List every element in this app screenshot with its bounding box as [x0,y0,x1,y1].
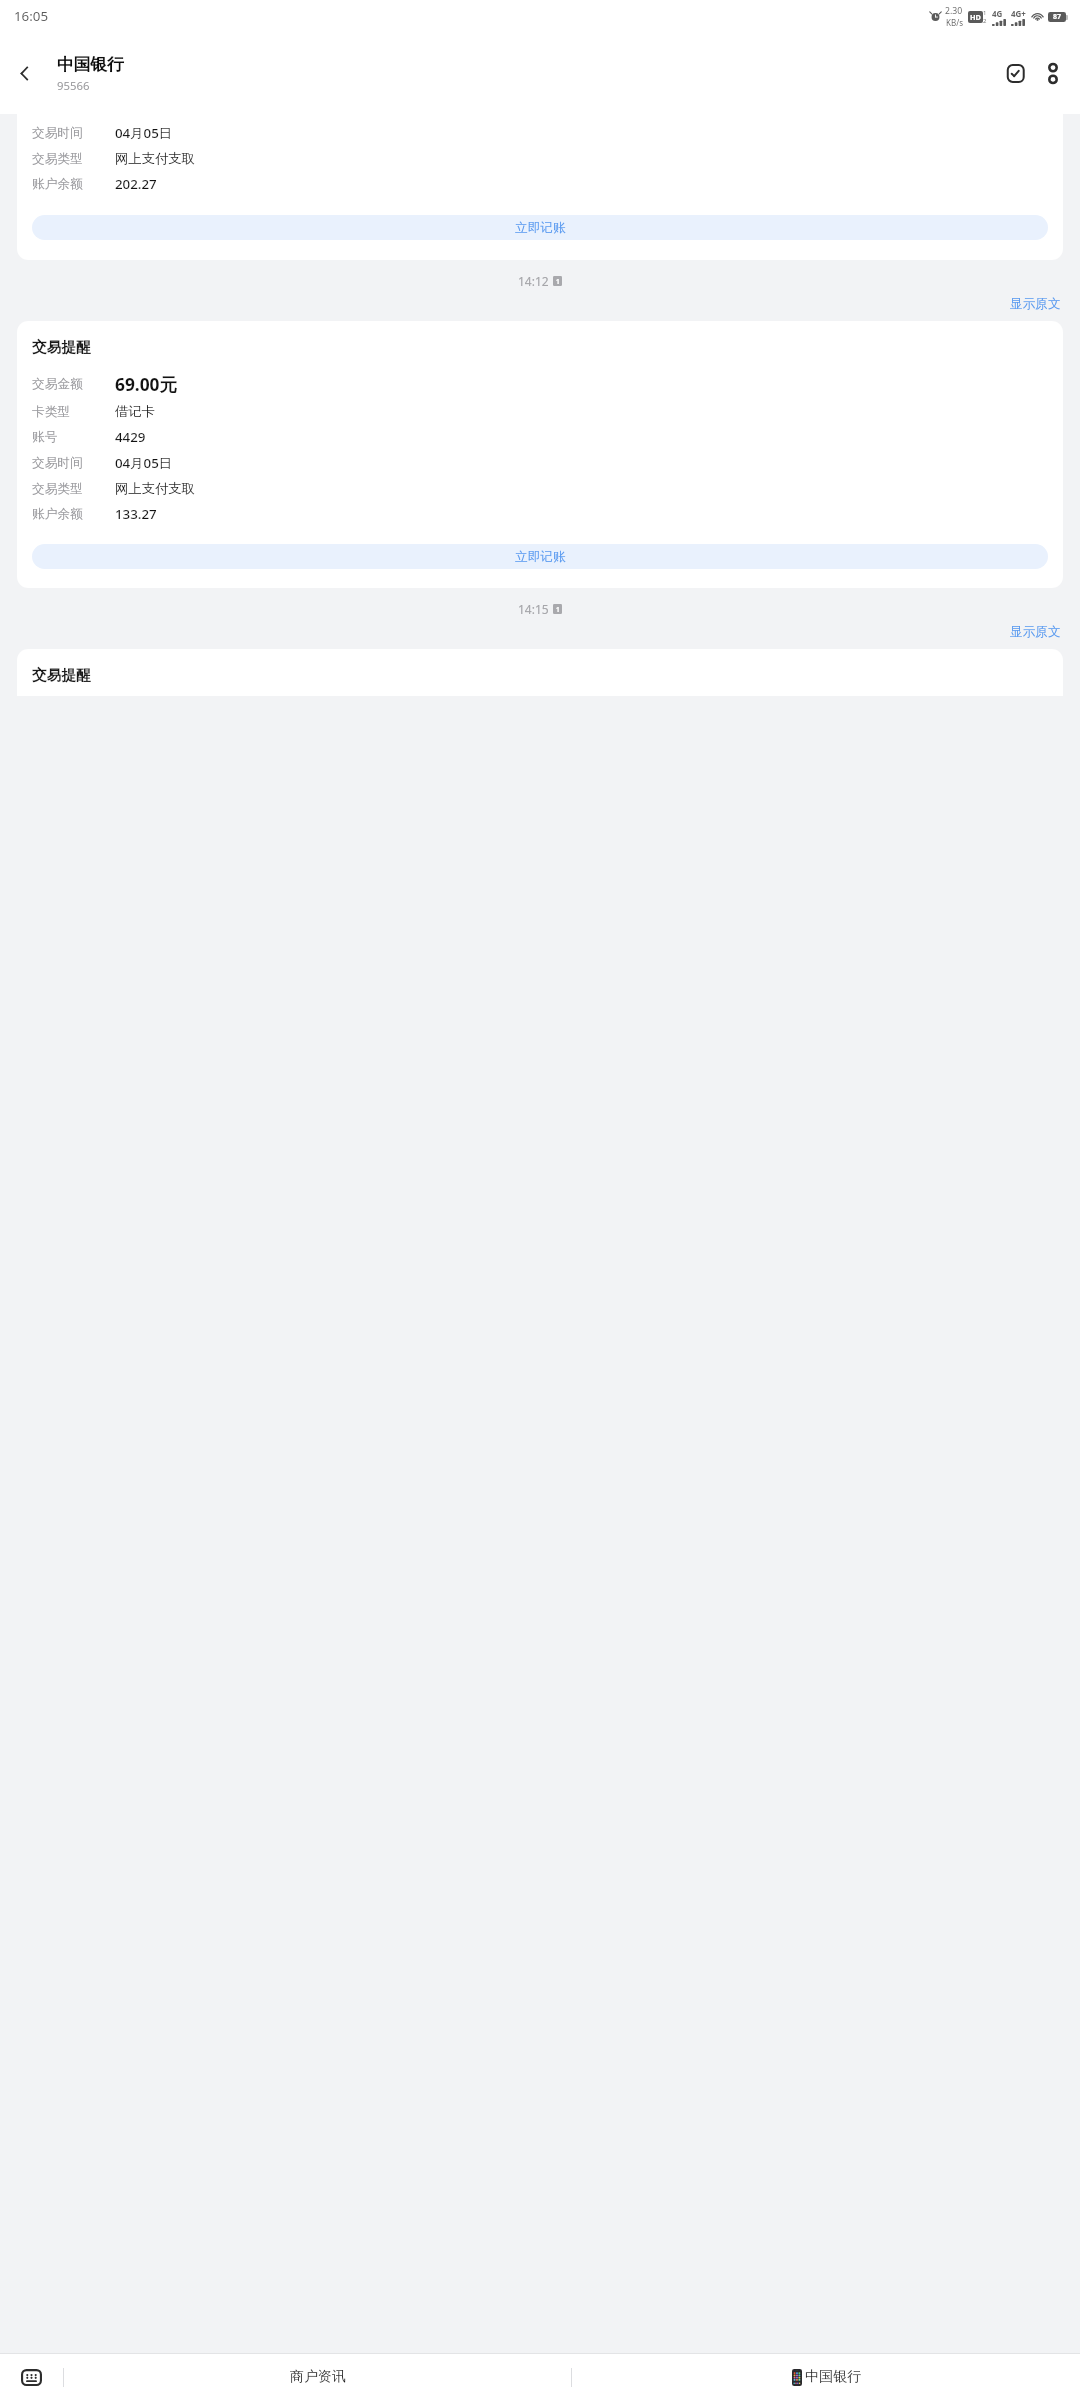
staticText: 14:15 [518,601,549,617]
staticText: 借记卡 [115,403,155,420]
button[interactable]: Keyboard [0,2354,63,2400]
staticText: 交易类型 [32,151,115,167]
button[interactable]: 交易提醒 [17,649,1063,696]
staticText: 95566 [57,78,90,93]
staticText: 1 [556,277,560,286]
staticText: 1 [556,605,560,614]
staticText: 立即记账 [515,549,566,565]
staticText: 交易时间 [32,455,115,471]
staticText: 中国银行 [805,2368,861,2386]
button[interactable]: 中国银行 [572,2354,1080,2400]
staticText: 中国银行 [57,54,124,75]
staticText: 69.00元 [115,372,177,396]
staticText: 04月05日 [115,124,173,142]
staticText: 4G+ [1011,8,1026,19]
staticText: 交易类型 [32,481,115,497]
staticText: 显示原文 [1010,624,1061,640]
staticText: 立即记账 [515,220,566,236]
button[interactable]: Select messages [997,55,1034,92]
staticText: 网上支付支取 [115,150,195,167]
button[interactable]: Back [6,55,43,92]
button[interactable]: 立即记账 [32,215,1048,240]
button[interactable]: 中国银行 [57,54,124,93]
staticText: 交易提醒 [32,338,91,356]
staticText: 交易时间 [32,125,115,141]
staticText: 1 [983,9,987,17]
staticText: KB/s [946,17,963,28]
staticText: 账号 [32,429,115,445]
staticText: 交易金额 [32,376,115,392]
staticText: 4G [992,8,1003,19]
staticText: 交易提醒 [32,666,91,684]
button[interactable]: 商户资讯 [64,2354,571,2400]
staticText: 4429 [115,428,146,446]
button[interactable]: 立即记账 [32,544,1048,569]
staticText: 04月05日 [115,454,173,472]
button[interactable]: 显示原文 [1008,622,1063,642]
staticText: 16:05 [14,7,49,25]
staticText: 2.30 [945,5,963,17]
button[interactable]: More options [1034,55,1071,92]
staticText: 商户资讯 [290,2368,346,2386]
staticText: 账户余额 [32,506,115,522]
staticText: 卡类型 [32,404,115,420]
button[interactable]: 交易时间 [17,114,1063,260]
staticText: 显示原文 [1010,296,1061,312]
staticText: 网上支付支取 [115,480,195,497]
button[interactable]: 交易提醒 [17,321,1063,588]
staticText: 14:12 [518,273,549,289]
staticText: HD [970,12,981,22]
staticText: 202.27 [115,175,157,193]
staticText: 2 [983,17,987,25]
staticText: 账户余额 [32,176,115,192]
staticText: 133.27 [115,505,157,523]
button[interactable]: 显示原文 [1008,294,1063,314]
staticText: 87 [1053,12,1062,22]
